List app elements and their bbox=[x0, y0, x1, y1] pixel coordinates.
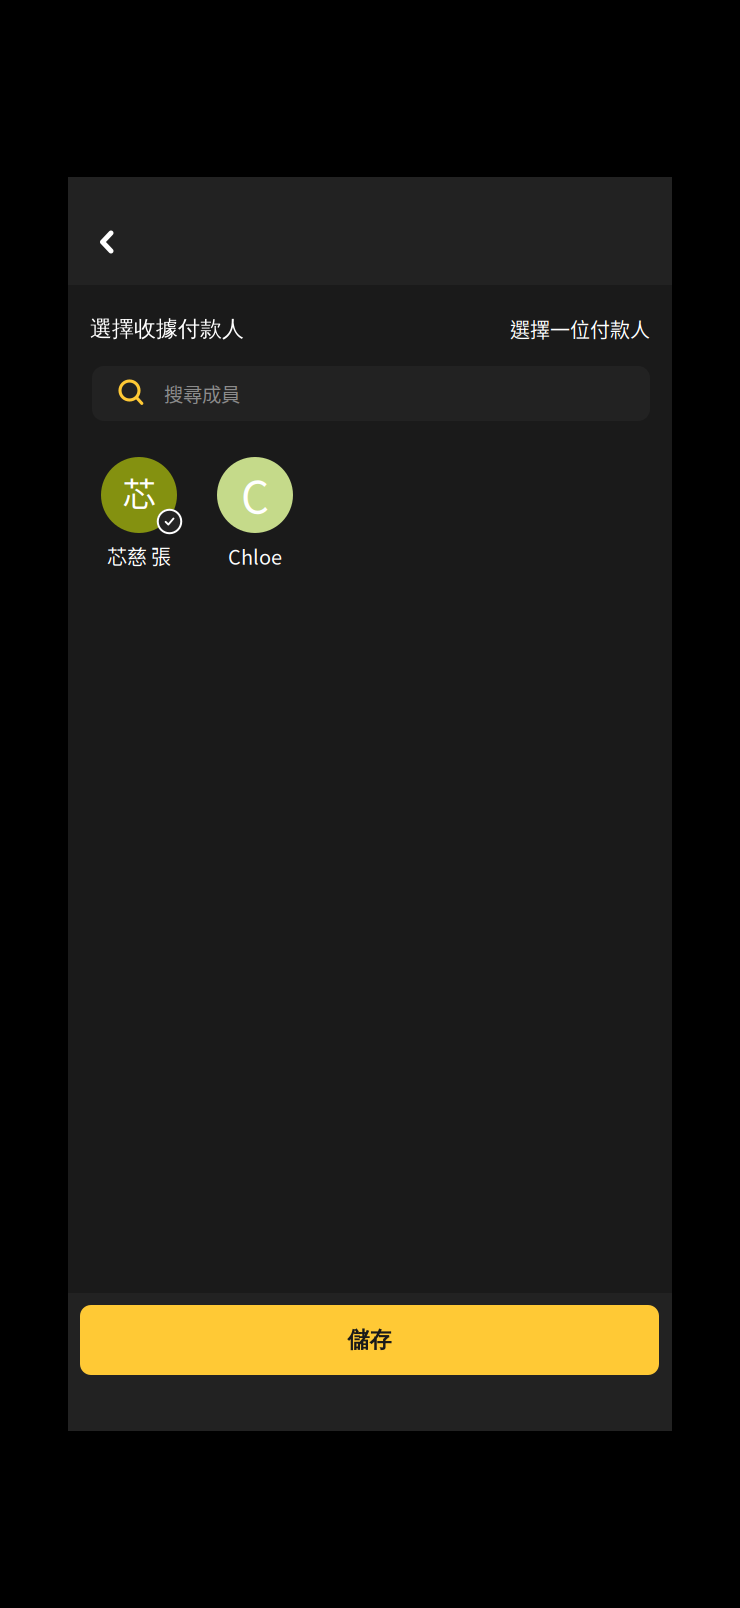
button[interactable]: 儲存 bbox=[80, 1305, 659, 1375]
button[interactable]: 芯 bbox=[81, 457, 197, 571]
staticText: 芯 bbox=[122, 468, 155, 516]
button[interactable]: 選擇一位付款人 bbox=[510, 314, 650, 343]
staticText: 選擇一位付款人 bbox=[510, 314, 650, 343]
staticText: 搜尋成員 bbox=[164, 379, 240, 407]
staticText: C bbox=[241, 462, 269, 526]
button[interactable]: 搜尋成員 bbox=[68, 366, 672, 421]
button[interactable]: C bbox=[197, 457, 313, 571]
button[interactable]: Back bbox=[80, 215, 134, 269]
staticText: Chloe bbox=[228, 541, 282, 570]
staticText: 儲存 bbox=[347, 1326, 391, 1354]
staticText: 芯慈 張 bbox=[107, 541, 171, 570]
staticText: 選擇收據付款人 bbox=[90, 315, 244, 343]
